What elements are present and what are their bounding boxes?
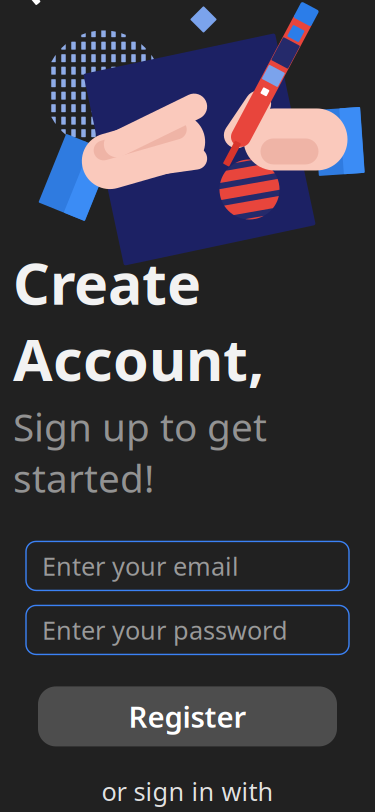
staticText: Sign up to get started! bbox=[13, 401, 267, 503]
button[interactable]: Enter your password bbox=[26, 605, 349, 654]
staticText: Register bbox=[128, 697, 246, 736]
staticText: or sign in with bbox=[101, 774, 273, 808]
button[interactable]: Enter your email bbox=[26, 541, 349, 590]
button[interactable]: Back bbox=[0, 0, 44, 14]
staticText: Enter your password bbox=[42, 613, 288, 647]
staticText: Enter your email bbox=[42, 549, 239, 583]
button[interactable]: Register bbox=[38, 686, 337, 746]
staticText: Create Account, bbox=[13, 244, 264, 397]
